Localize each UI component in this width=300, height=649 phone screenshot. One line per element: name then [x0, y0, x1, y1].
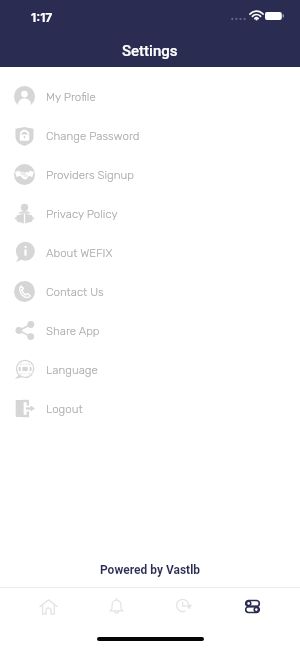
button[interactable]: Language: [0, 350, 300, 389]
staticText: 1:17: [31, 10, 53, 25]
button[interactable]: Change Password: [0, 116, 300, 155]
button[interactable]: About WEFIX: [0, 233, 300, 272]
staticText: Logout: [46, 402, 83, 416]
staticText: About WEFIX: [46, 246, 113, 260]
staticText: Change Password: [46, 129, 140, 143]
staticText: Providers Signup: [46, 168, 134, 182]
button[interactable]: History: [150, 588, 218, 624]
staticText: Settings: [122, 42, 178, 60]
button[interactable]: Providers Signup: [0, 155, 300, 194]
button[interactable]: Privacy Policy: [0, 194, 300, 233]
button[interactable]: My Profile: [0, 77, 300, 116]
button[interactable]: Settings: [218, 588, 286, 624]
staticText: My Profile: [46, 90, 96, 104]
staticText: Contact Us: [46, 285, 104, 299]
button[interactable]: Share App: [0, 311, 300, 350]
button[interactable]: Contact Us: [0, 272, 300, 311]
button[interactable]: Home: [14, 588, 82, 624]
staticText: Language: [46, 363, 98, 377]
button[interactable]: Logout: [0, 389, 300, 428]
button[interactable]: Notifications: [82, 588, 150, 624]
staticText: Share App: [46, 324, 100, 338]
staticText: Privacy Policy: [46, 207, 118, 221]
staticText: Powered by Vastlb: [0, 563, 300, 577]
